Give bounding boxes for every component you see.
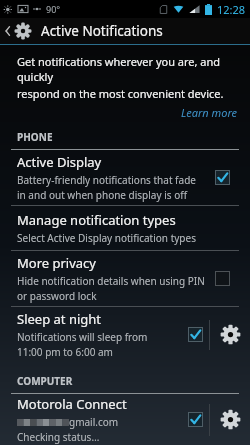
button[interactable]: Settings for Motorola Connect bbox=[210, 394, 250, 445]
staticText: Select Active Display notification types bbox=[17, 231, 196, 245]
button[interactable]: Settings for Sleep at night bbox=[210, 307, 250, 362]
staticText: Active Notifications bbox=[41, 22, 163, 40]
staticText: Sleep at night bbox=[17, 310, 102, 328]
staticText: Learn more bbox=[181, 105, 238, 120]
staticText: 12:28 bbox=[217, 2, 246, 17]
button[interactable]: Sleep at night bbox=[0, 307, 250, 362]
staticText: Notifications will sleep from bbox=[17, 330, 148, 344]
staticText: Battery-friendly notifications that fade bbox=[17, 173, 196, 187]
staticText: in and out when phone display is off bbox=[17, 188, 188, 202]
staticText: Motorola Connect bbox=[17, 395, 127, 413]
button[interactable]: Motorola Connect checkbox bbox=[182, 412, 209, 427]
staticText: Hide notification details when using PIN bbox=[17, 274, 205, 288]
staticText: 11:00 pm to 6:00 am bbox=[17, 345, 113, 359]
button[interactable]: Back bbox=[0, 18, 250, 44]
button[interactable]: More privacy checkbox bbox=[209, 271, 236, 286]
staticText: COMPUTER bbox=[17, 374, 73, 388]
staticText: Checking status… bbox=[17, 430, 100, 444]
button[interactable]: Active Display checkbox bbox=[209, 170, 236, 185]
staticText: More privacy bbox=[17, 254, 96, 272]
staticText: or password lock bbox=[17, 289, 97, 303]
button[interactable]: Sleep at night checkbox bbox=[182, 327, 209, 342]
staticText: respond on the most convenient device. bbox=[17, 86, 224, 101]
staticText: PHONE bbox=[17, 130, 53, 144]
button[interactable]: More privacy bbox=[0, 251, 250, 306]
button[interactable]: Active Display bbox=[0, 150, 250, 205]
staticText: 90° bbox=[46, 3, 61, 15]
staticText: Active Display bbox=[17, 153, 102, 171]
button[interactable]: Motorola Connect bbox=[0, 394, 250, 445]
button[interactable]: Learn more bbox=[179, 104, 240, 121]
button[interactable]: Manage notification types bbox=[0, 206, 250, 250]
staticText: Get notifications wherever you are, and … bbox=[17, 54, 240, 84]
staticText: Manage notification types bbox=[17, 211, 176, 229]
staticText: gmail.com bbox=[69, 415, 119, 429]
